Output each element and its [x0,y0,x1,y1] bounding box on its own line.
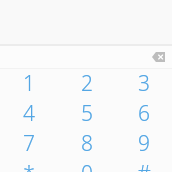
button[interactable]: Dial 1 [0,69,58,99]
button[interactable]: Dial 6 [115,99,172,129]
button[interactable]: Dial # [115,159,172,172]
staticText: 2 [81,69,93,98]
staticText: 7 [23,129,35,158]
button[interactable]: Dial 4 [0,99,58,129]
staticText: * [23,159,35,172]
button[interactable]: Dial 3 [115,69,172,99]
button[interactable]: Dial * [0,159,58,172]
staticText: 5 [81,99,93,128]
staticText: 3 [138,69,150,98]
button[interactable]: Dial 9 [115,129,172,159]
staticText: 0 [81,159,93,172]
staticText: 1 [23,69,35,98]
button[interactable]: Dial 5 [58,99,115,129]
button[interactable]: Dial 2 [58,69,115,99]
staticText: 4 [23,99,35,128]
staticText: # [137,159,151,172]
button[interactable]: Dial 7 [0,129,58,159]
staticText: 9 [138,129,150,158]
button[interactable]: Dial 8 [58,129,115,159]
button[interactable]: Backspace [148,47,168,67]
button[interactable]: Dial 0 [58,159,115,172]
staticText: 8 [81,129,93,158]
staticText: 6 [138,99,150,128]
